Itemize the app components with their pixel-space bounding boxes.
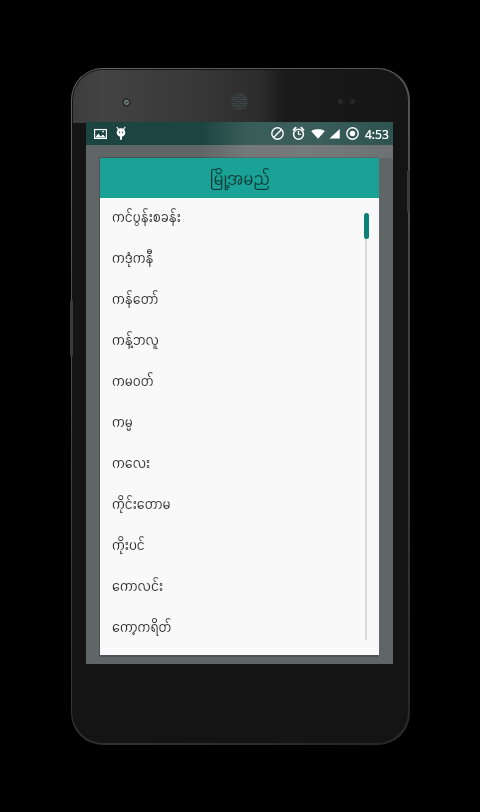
button[interactable]: ကော့ကရိတ်	[100, 606, 379, 647]
staticText: ကိုင်းတောမ	[112, 495, 171, 513]
staticText: 4:53	[365, 126, 389, 142]
staticText: မြို့အမည်	[210, 167, 270, 190]
button[interactable]: မြို့အမည်	[100, 158, 379, 198]
button[interactable]: ကိုးပင်	[100, 524, 379, 565]
staticText: ကောလင်း	[112, 577, 163, 595]
button[interactable]: ကန့်ဘလူ	[100, 319, 379, 360]
button[interactable]: ကဒုံကနီ	[100, 237, 379, 278]
staticText: ကန်တော်	[112, 290, 159, 308]
button[interactable]: ကင်ပွန်းစခန်း	[100, 196, 379, 237]
staticText: ကလေး	[112, 454, 151, 472]
button[interactable]: ကန်တော်	[100, 278, 379, 319]
staticText: ကင်ပွန်းစခန်း	[112, 208, 181, 226]
staticText: ကမဝတ်	[112, 372, 154, 390]
staticText: ကော့ကရိတ်	[112, 618, 172, 636]
staticText: ကဒုံကနီ	[112, 249, 154, 267]
button[interactable]: ကိုင်းတောမ	[100, 483, 379, 524]
staticText: ကိုးပင်	[112, 536, 145, 554]
button[interactable]: ကလေး	[100, 442, 379, 483]
button[interactable]: ကမ္မ	[100, 401, 379, 442]
button[interactable]: ကမဝတ်	[100, 360, 379, 401]
staticText: ကန့်ဘလူ	[112, 331, 159, 349]
button[interactable]: ကောလင်း	[100, 565, 379, 606]
staticText: ကမ္မ	[112, 413, 133, 431]
